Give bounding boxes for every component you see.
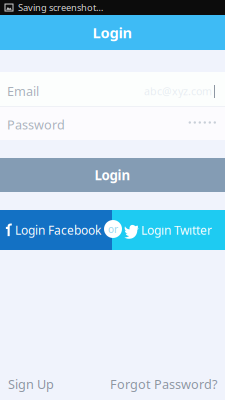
- staticText: or: [108, 222, 118, 236]
- staticText: Login: [94, 166, 130, 184]
- button[interactable]: Login: [0, 158, 225, 192]
- staticText: Login Twitter: [141, 222, 212, 238]
- button[interactable]: Email: [0, 72, 225, 106]
- staticText: Password: [7, 116, 65, 133]
- button[interactable]: Sign Up: [2, 368, 60, 400]
- staticText: Sign Up: [8, 375, 54, 393]
- button[interactable]: Password: [0, 107, 225, 140]
- button[interactable]: Forgot Password?: [104, 368, 223, 400]
- staticText: Forgot Password?: [110, 375, 217, 393]
- staticText: Login Facebook: [15, 222, 101, 238]
- staticText: Email: [7, 82, 39, 100]
- staticText: Login: [92, 22, 132, 42]
- button[interactable]: Login Facebook: [0, 210, 112, 250]
- staticText: abc@xyz.com: [144, 84, 212, 98]
- button[interactable]: Login Twitter: [112, 210, 225, 250]
- staticText: Saving screenshot…: [18, 1, 103, 14]
